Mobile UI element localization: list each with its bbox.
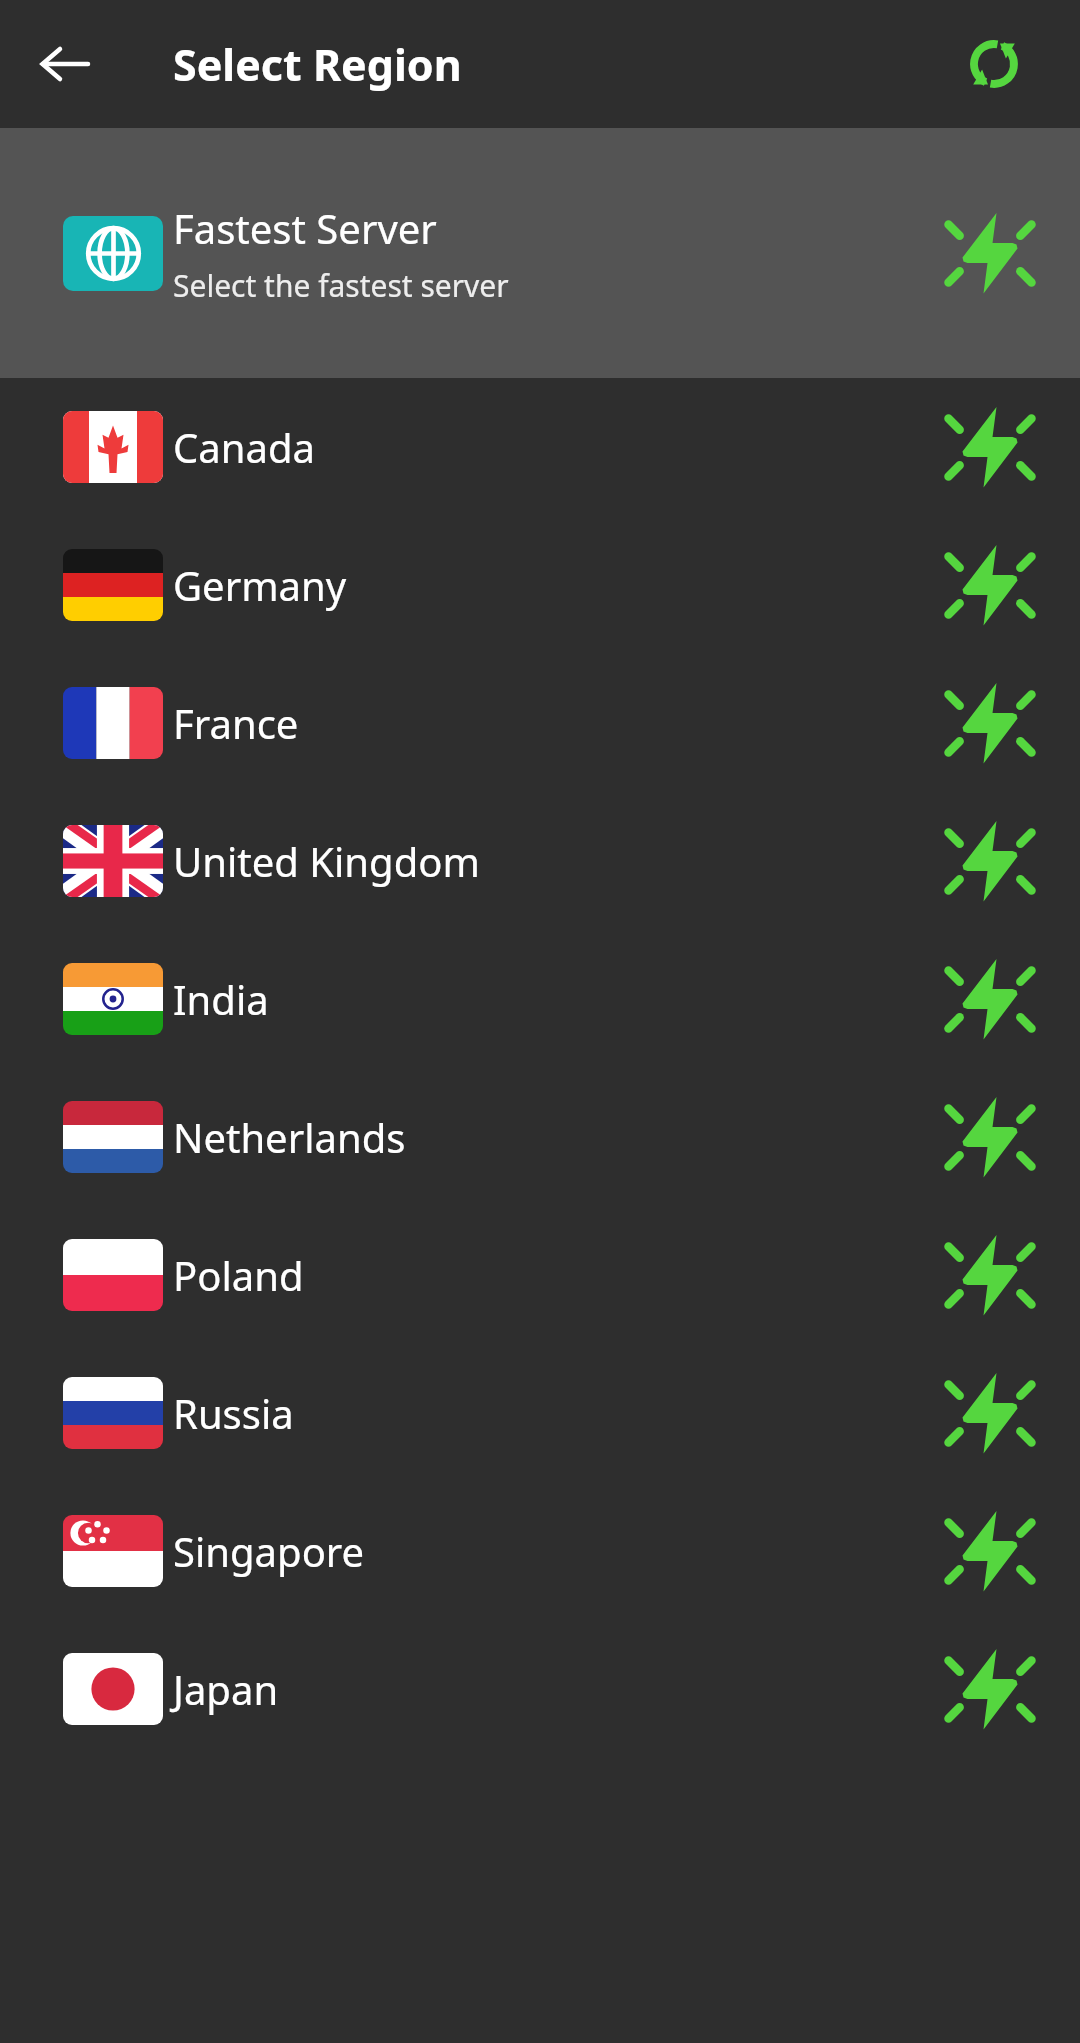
button[interactable]: Canada (0, 378, 1080, 516)
button[interactable]: Russia (0, 1344, 1080, 1482)
staticText: Select the fastest server (173, 265, 509, 306)
staticText: Fastest Server (173, 201, 437, 255)
button[interactable]: Refresh (948, 18, 1040, 110)
staticText: Japan (173, 1662, 900, 1716)
button[interactable]: France (0, 654, 1080, 792)
button[interactable]: Germany (0, 516, 1080, 654)
staticText: Canada (173, 420, 900, 474)
staticText: Netherlands (173, 1110, 900, 1164)
button[interactable]: Poland (0, 1206, 1080, 1344)
button[interactable]: Japan (0, 1620, 1080, 1758)
button[interactable]: Fastest Server (0, 128, 1080, 378)
button[interactable]: Back (22, 21, 108, 107)
button[interactable]: India (0, 930, 1080, 1068)
staticText: Singapore (173, 1524, 900, 1578)
staticText: Poland (173, 1248, 900, 1302)
button[interactable]: Singapore (0, 1482, 1080, 1620)
staticText: France (173, 696, 900, 750)
button[interactable]: United Kingdom (0, 792, 1080, 930)
staticText: India (173, 972, 900, 1026)
staticText: Russia (173, 1386, 900, 1440)
staticText: Select Region (173, 35, 462, 94)
button[interactable]: Netherlands (0, 1068, 1080, 1206)
staticText: Germany (173, 558, 900, 612)
staticText: United Kingdom (173, 834, 900, 888)
